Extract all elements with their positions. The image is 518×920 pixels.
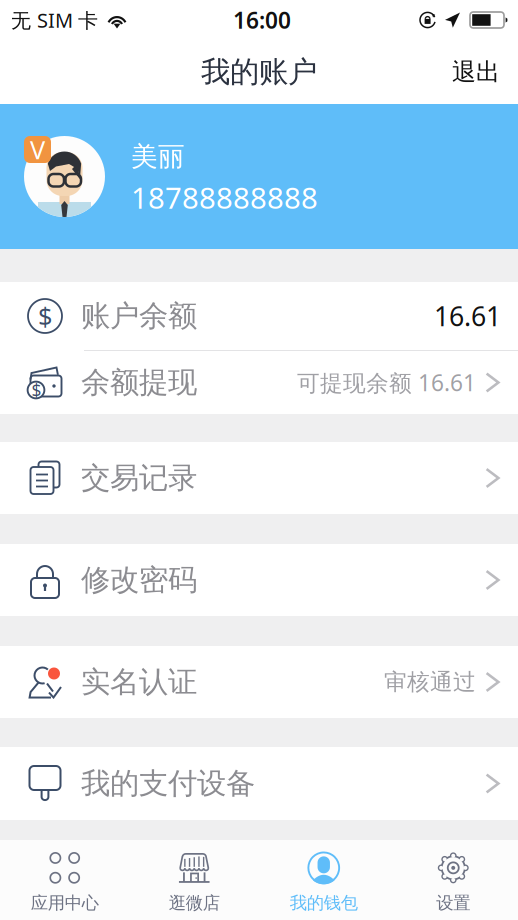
button[interactable]: 我的钱包	[259, 841, 388, 919]
button[interactable]: $	[0, 282, 518, 350]
staticText: 余额提现	[81, 364, 197, 400]
staticText: 修改密码	[81, 562, 197, 598]
button[interactable]: $	[0, 351, 518, 414]
staticText: 我的支付设备	[81, 765, 255, 801]
staticText: 应用中心	[31, 892, 99, 914]
staticText: 逛微店	[169, 892, 220, 914]
button[interactable]: 交易记录	[0, 442, 518, 514]
staticText: 交易记录	[81, 460, 197, 496]
staticText: $	[38, 299, 52, 333]
button[interactable]: 逛微店	[129, 841, 259, 919]
staticText: 我的钱包	[290, 892, 358, 914]
staticText: 退出	[452, 57, 500, 87]
button[interactable]: 实名认证	[0, 646, 518, 718]
button[interactable]: 我的支付设备	[0, 747, 518, 820]
staticText: 可提现余额 16.61	[297, 367, 476, 397]
staticText: $	[31, 378, 41, 401]
button[interactable]: 应用中心	[0, 841, 129, 919]
staticText: 账户余额	[81, 298, 197, 334]
staticText: 无 SIM 卡	[11, 7, 98, 33]
staticText: 16:00	[233, 5, 291, 35]
button[interactable]: 修改密码	[0, 544, 518, 616]
staticText: 设置	[436, 892, 470, 914]
staticText: 我的账户	[201, 54, 317, 90]
staticText: 美丽	[131, 140, 185, 173]
staticText: V	[30, 133, 45, 166]
staticText: 实名认证	[81, 664, 197, 700]
button[interactable]: 退出	[434, 41, 518, 103]
staticText: 审核通过	[384, 668, 476, 696]
staticText: 16.61	[434, 298, 501, 334]
button[interactable]: 设置	[388, 841, 518, 919]
staticText: 18788888888	[131, 178, 318, 217]
